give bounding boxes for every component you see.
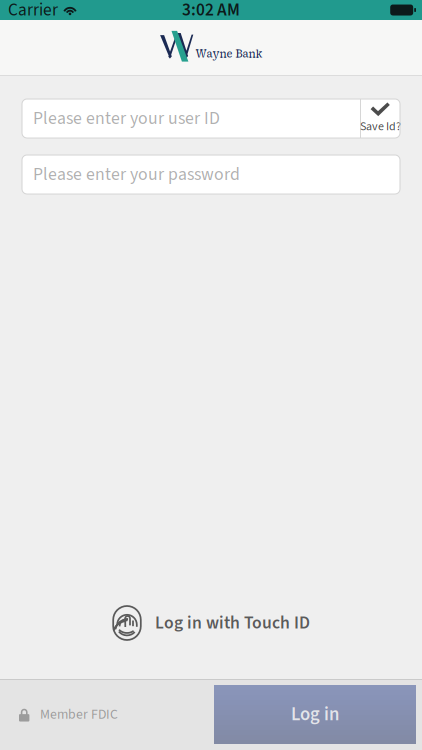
button[interactable]: Log in <box>214 685 416 744</box>
button[interactable]: Save Id <box>361 99 400 138</box>
staticText: Carrier <box>8 0 58 22</box>
staticText: Member FDIC <box>40 705 118 724</box>
staticText: 3:02 AM <box>182 0 240 22</box>
staticText: Please enter your user ID <box>33 106 220 131</box>
button[interactable]: Please enter your user ID <box>22 99 360 138</box>
staticText: Please enter your password <box>33 162 240 187</box>
button[interactable]: Log in with Touch ID <box>112 605 310 641</box>
staticText: Log in <box>291 701 339 728</box>
button[interactable]: Please enter your password <box>0 155 422 194</box>
staticText: Wayne Bank <box>195 46 262 61</box>
staticText: Save Id? <box>360 118 401 135</box>
staticText: Log in with Touch ID <box>155 610 310 636</box>
